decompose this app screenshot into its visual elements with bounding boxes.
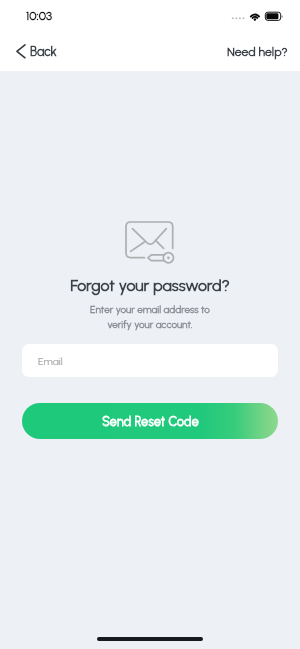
staticText: Email: [38, 355, 63, 367]
staticText: Back: [30, 44, 57, 59]
button[interactable]: Need help?: [227, 32, 300, 71]
button[interactable]: Email: [22, 344, 278, 377]
staticText: Enter your email address to verify your …: [0, 303, 300, 331]
staticText: Forgot your password?: [0, 276, 300, 295]
other: Password reset email: [120, 216, 182, 270]
staticText: Send Reset Code: [102, 414, 199, 429]
staticText: Need help?: [227, 44, 288, 59]
button[interactable]: Back: [10, 32, 68, 71]
button[interactable]: Send Reset Code: [22, 403, 278, 439]
staticText: 10:03: [26, 8, 53, 23]
